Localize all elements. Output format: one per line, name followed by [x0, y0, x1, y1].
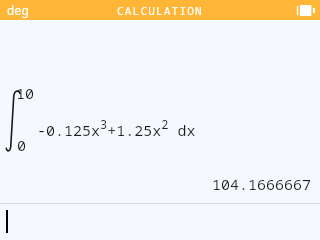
button[interactable]: Expression input — [0, 204, 320, 240]
staticText: 0 — [17, 135, 27, 155]
staticText: CALCULATION — [117, 3, 203, 18]
button[interactable]: Battery — [296, 3, 316, 17]
staticText: 10 — [16, 83, 35, 103]
staticText: deg — [7, 2, 29, 18]
staticText: -0.125x3+1.25x2 dx — [37, 116, 196, 140]
button[interactable]: deg — [0, 2, 36, 18]
staticText: 104.1666667 — [212, 174, 312, 194]
